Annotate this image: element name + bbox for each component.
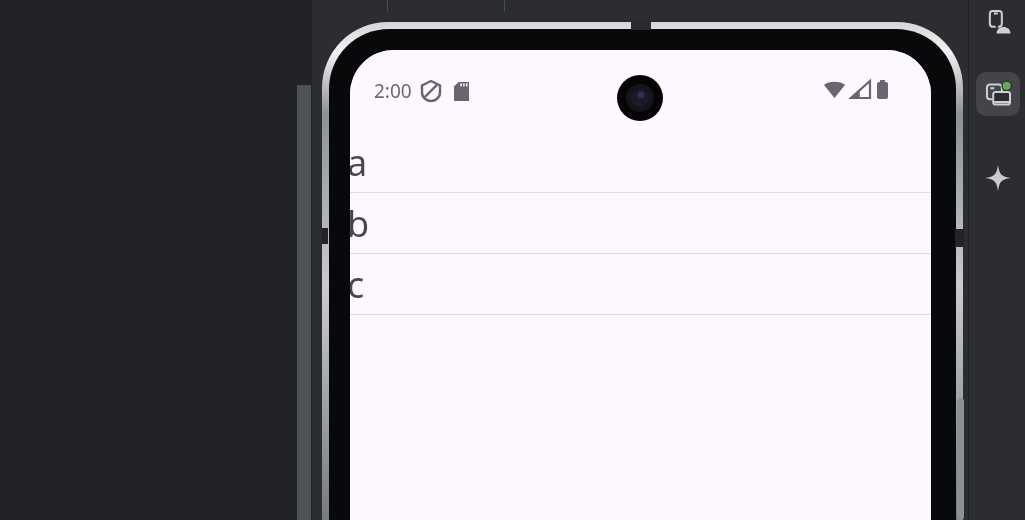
staticText: b bbox=[350, 199, 370, 248]
staticText: c bbox=[350, 260, 365, 309]
staticText: 2:00 bbox=[374, 78, 412, 104]
button[interactable]: Running Devices bbox=[976, 72, 1020, 116]
button[interactable]: c bbox=[350, 254, 931, 315]
staticText: a bbox=[350, 138, 368, 187]
button[interactable]: b bbox=[350, 193, 931, 254]
button[interactable]: a bbox=[350, 132, 931, 193]
button[interactable]: Gemini bbox=[976, 156, 1020, 200]
button[interactable]: Device Manager bbox=[976, 0, 1020, 44]
